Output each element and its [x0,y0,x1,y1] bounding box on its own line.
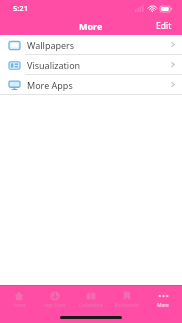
staticText: Home [2,302,36,308]
staticText: More [146,302,180,308]
staticText: Bookmarks [110,302,144,308]
button[interactable]: Bookmarks [110,290,144,308]
staticText: More [79,20,103,32]
button[interactable]: App Store [38,290,72,308]
button[interactable]: More Apps [0,75,182,94]
staticText: App Store [38,302,72,308]
button[interactable]: Home [2,290,36,308]
button[interactable]: Collections [74,290,108,308]
staticText: Visualization [27,59,81,71]
button[interactable]: More [146,290,180,308]
staticText: Collections [74,302,108,308]
staticText: 5:21 [13,3,28,13]
button[interactable]: Wallpapers [0,35,182,54]
button[interactable]: Edit [146,17,182,35]
staticText: More Apps [27,79,73,91]
button[interactable]: Visualization [0,55,182,74]
staticText: Edit [156,20,172,32]
staticText: Wallpapers [27,39,75,51]
